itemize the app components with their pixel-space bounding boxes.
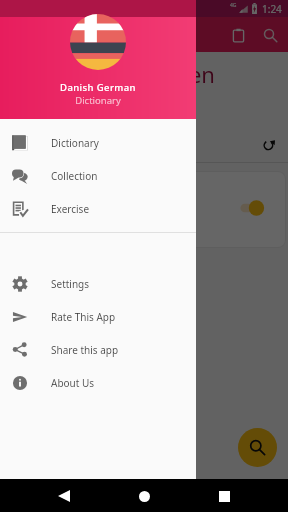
staticText: Danish German: [0, 81, 196, 94]
button[interactable]: Recents: [208, 480, 240, 512]
staticText: Dictionary Screen: [34, 59, 215, 89]
button[interactable]: Collection: [0, 159, 196, 192]
button[interactable]: Clipboard: [222, 19, 254, 51]
button[interactable]: Search: [238, 428, 277, 467]
staticText: 4G: [230, 2, 237, 9]
staticText: Share this app: [51, 343, 119, 357]
button[interactable]: Refresh: [257, 133, 281, 157]
staticText: About Us: [51, 376, 95, 390]
button[interactable]: Rate This App: [0, 300, 196, 333]
staticText: Exercise: [51, 202, 90, 216]
staticText: Rate This App: [51, 310, 116, 324]
button[interactable]: Exercise: [0, 192, 196, 225]
staticText: Settings: [51, 277, 90, 291]
button[interactable]: Search: [254, 19, 286, 51]
button[interactable]: Dictionary: [0, 126, 196, 159]
staticText: Dictionary: [0, 94, 196, 107]
button[interactable]: About Us: [0, 366, 196, 399]
staticText: Collection: [51, 169, 98, 183]
staticText: Dictionary: [51, 136, 99, 150]
button[interactable]: Home: [128, 480, 160, 512]
button[interactable]: Share this app: [0, 333, 196, 366]
button[interactable]: Back: [48, 480, 80, 512]
staticText: 1:24: [262, 2, 282, 16]
button[interactable]: Settings: [0, 267, 196, 300]
button[interactable]: [4, 172, 285, 247]
